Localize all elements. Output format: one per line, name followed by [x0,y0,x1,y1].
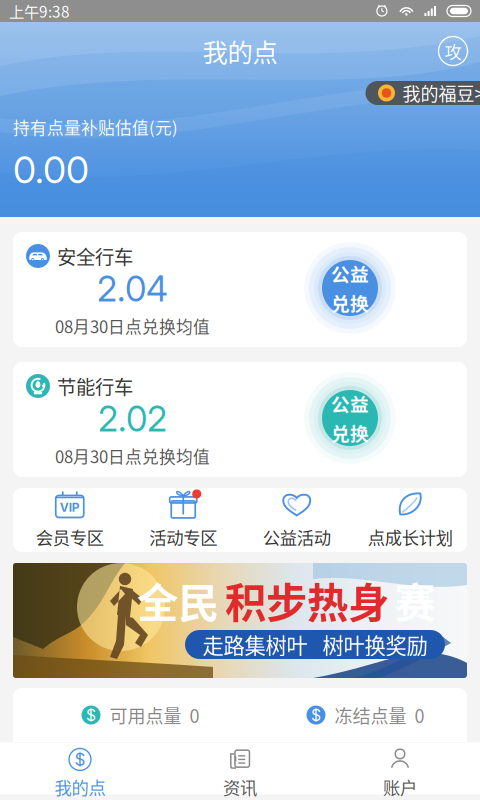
button[interactable]: S [0,742,160,800]
staticText: 会员专区 [36,524,104,550]
button[interactable]: 公益活动 [240,480,353,560]
staticText: 走路集树叶 树叶换奖励 [202,629,427,660]
staticText: 2.04 [97,268,168,310]
staticText: 持有点量补贴估值(元) [13,115,178,139]
button[interactable]: 点成长计划 [353,480,467,560]
staticText: 我的点 [202,33,277,69]
staticText: 资讯 [223,774,257,800]
button[interactable]: 我的福豆> [365,81,480,105]
staticText: 08月30日点兑换均值 [55,444,210,468]
button[interactable]: S [13,688,240,742]
staticText: 积步热身 [225,570,389,630]
staticText: 账户 [383,774,417,800]
staticText: 08月30日点兑换均值 [55,314,210,338]
staticText: 安全行车 [57,242,133,270]
staticText: S [86,705,96,724]
staticText: 赛 [394,570,435,630]
staticText: 节能行车 [57,372,133,400]
staticText: 公益 [331,390,369,417]
staticText: 兑换 [331,289,369,316]
button[interactable]: S [240,688,467,742]
staticText: 活动专区 [149,524,217,550]
staticText: 上午9:38 [9,0,70,22]
button[interactable]: 攻略 [435,33,471,69]
button[interactable]: 资讯 [160,742,320,800]
button[interactable]: 活动专区 [126,480,240,560]
staticText: S [311,705,321,724]
staticText: 攻 [444,38,461,64]
button[interactable]: 全民积步热身赛 走路集树叶 树叶换奖励 [13,563,467,678]
staticText: 公益活动 [263,524,331,550]
staticText: 点成长计划 [368,524,453,550]
button[interactable]: 账户 [320,742,480,800]
staticText: 0.00 [13,147,89,192]
staticText: 全民 [137,570,219,630]
staticText: 2.02 [98,398,167,440]
button[interactable]: 公益兑换 [303,241,397,335]
staticText: 冻结点量 0 [334,702,424,728]
staticText: 我的福豆> [402,80,480,106]
button[interactable]: 公益兑换 [303,371,397,465]
staticText: 可用点量 0 [109,702,199,728]
staticText: 我的点 [54,774,105,800]
staticText: 公益 [331,260,369,287]
staticText: 兑换 [331,419,369,446]
button[interactable]: VIP [13,480,126,560]
staticText: S [74,749,85,770]
staticText: VIP [60,500,80,515]
